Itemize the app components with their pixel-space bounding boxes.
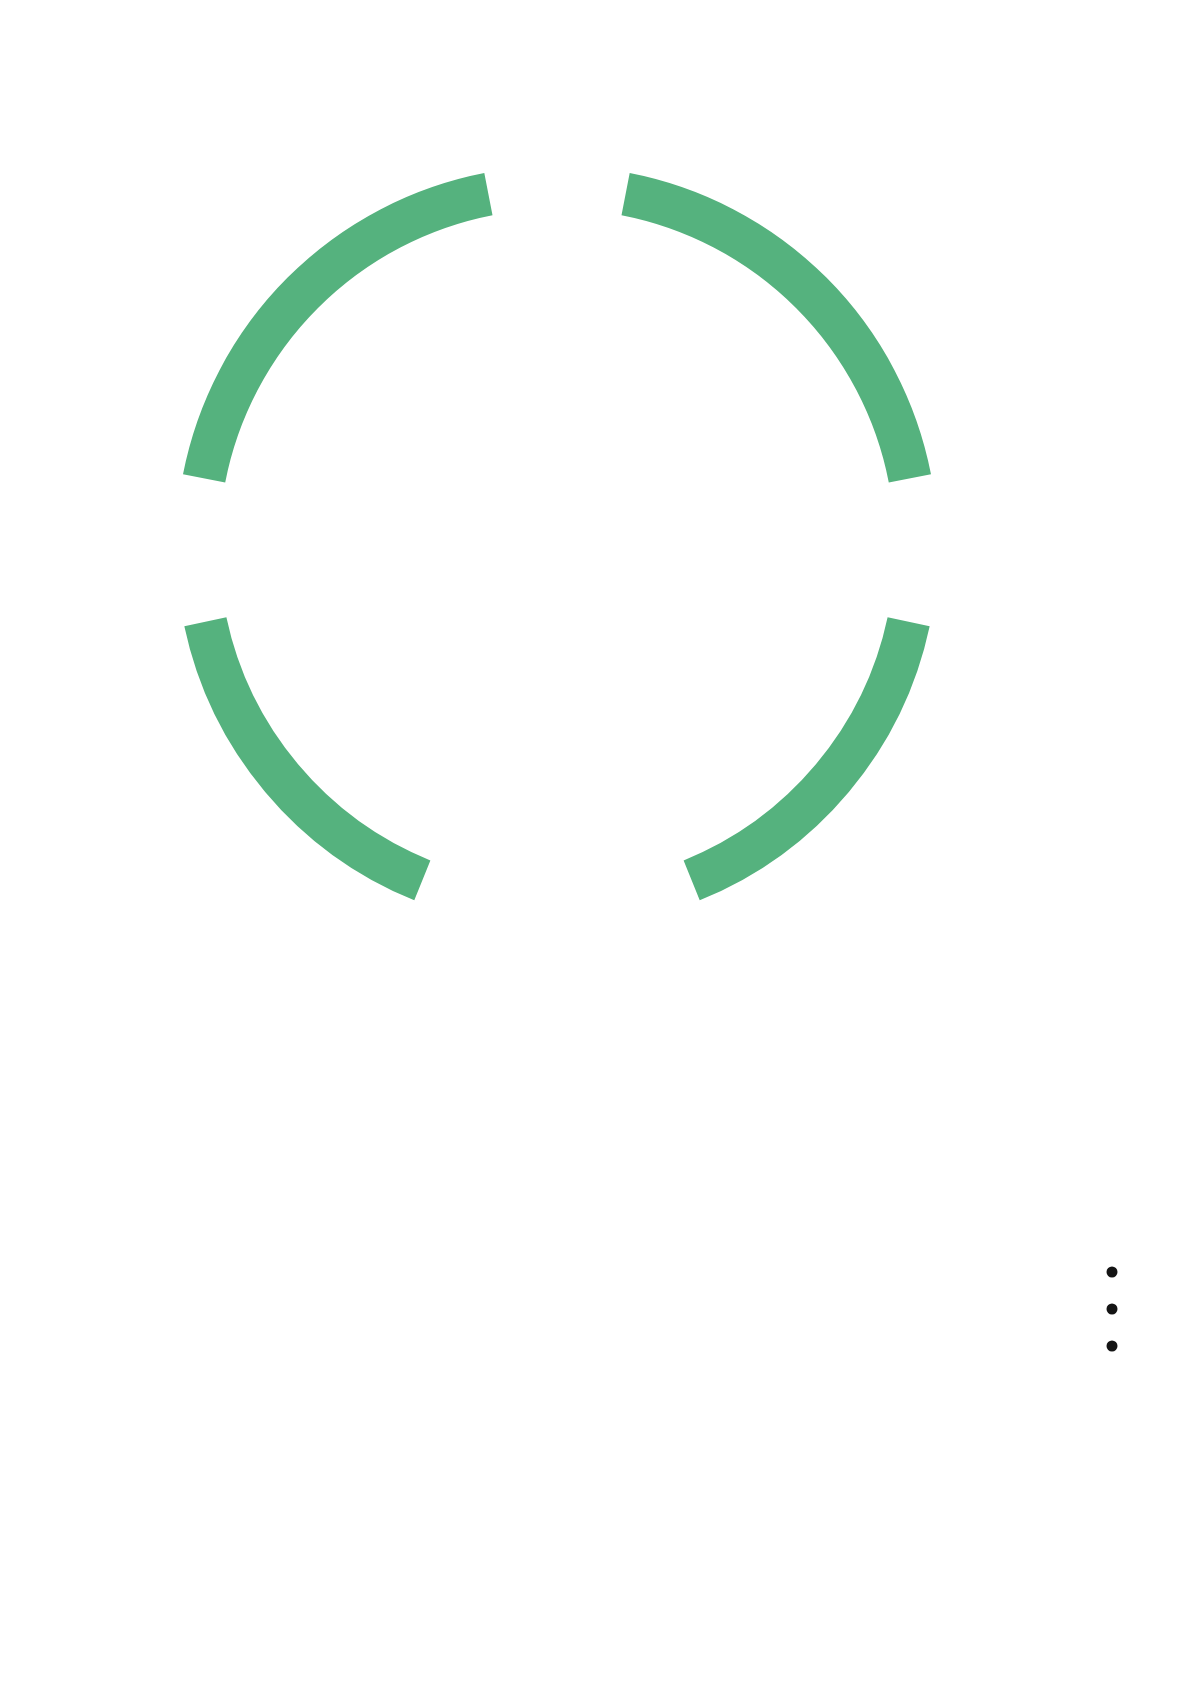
button[interactable]: Loading <box>0 0 1190 1684</box>
